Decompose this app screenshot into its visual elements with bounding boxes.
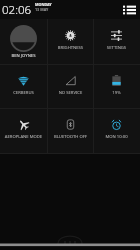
button[interactable]: MON 10:00 [93, 108, 140, 153]
button[interactable]: SETTINGS [93, 19, 140, 64]
staticText: MON 10:00 [93, 134, 140, 140]
staticText: CERBERUS [0, 90, 47, 96]
staticText: BRIGHTNESS [47, 45, 94, 51]
staticText: BLUETOOTH OFF [47, 134, 94, 140]
button[interactable]: Close quick settings [0, 232, 140, 250]
staticText: NO SERVICE [47, 90, 94, 96]
button[interactable]: BRIGHTNESS [47, 19, 94, 64]
staticText: AEROPLANE MODE [0, 134, 47, 140]
button[interactable]: AEROPLANE MODE [0, 108, 47, 153]
staticText: BEN JOYNES [0, 53, 47, 59]
button[interactable]: 19% [93, 64, 140, 109]
button[interactable]: CERBERUS [0, 64, 47, 109]
staticText: SETTINGS [93, 45, 140, 51]
button[interactable]: BLUETOOTH OFF [47, 108, 94, 153]
button[interactable]: NO SERVICE [47, 64, 94, 109]
staticText: MONDAY [35, 2, 52, 7]
button[interactable]: Quick settings [120, 1, 138, 19]
staticText: 02:06 [2, 2, 32, 18]
button[interactable]: Profile Ben Joynes [0, 19, 47, 64]
staticText: 19% [93, 90, 140, 96]
staticText: 13 MAY [35, 7, 49, 12]
